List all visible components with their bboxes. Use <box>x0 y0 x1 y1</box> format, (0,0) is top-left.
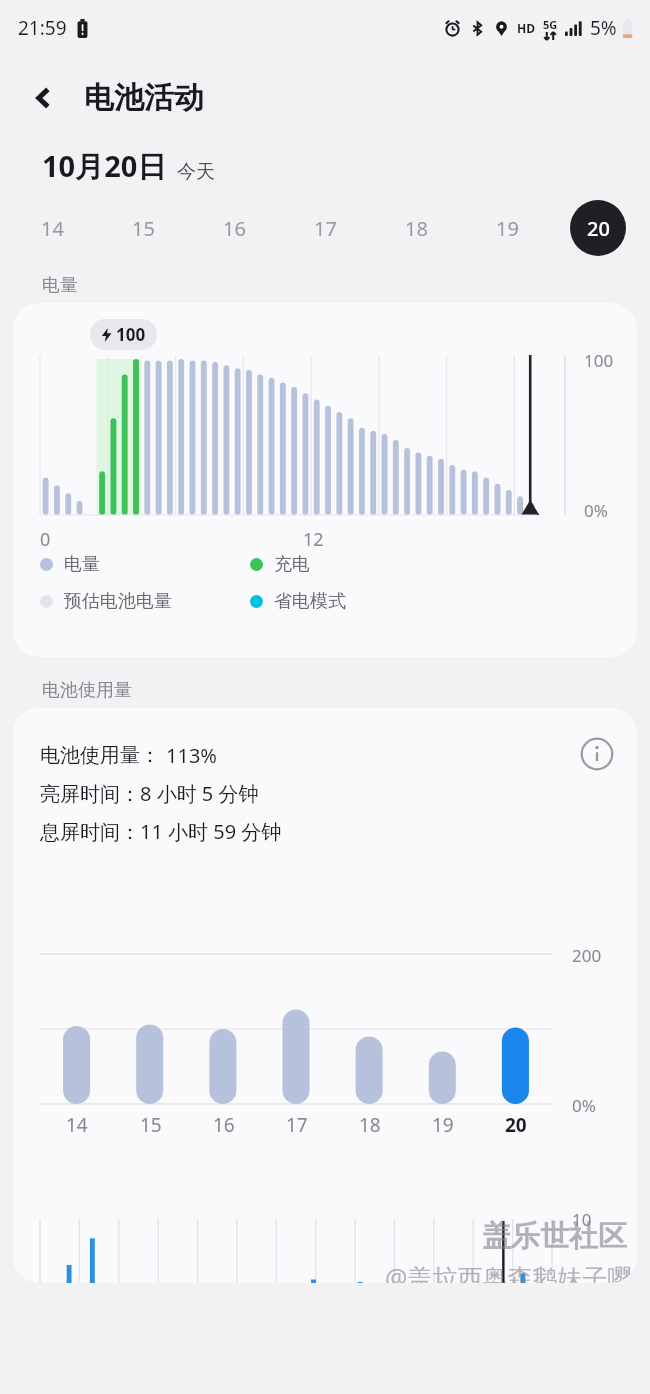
staticText: 15 <box>132 215 155 242</box>
staticText: 20 <box>505 1112 527 1138</box>
staticText: 电量 <box>42 274 78 297</box>
button[interactable]: 20 <box>570 200 626 256</box>
staticText: 0% <box>584 499 608 522</box>
staticText: 电池活动 <box>84 79 204 117</box>
button[interactable]: 省电模式 <box>250 590 450 613</box>
button[interactable]: 15 <box>115 200 171 256</box>
staticText: 19 <box>432 1112 454 1138</box>
button[interactable]: 14 <box>24 200 80 256</box>
staticText: 20 <box>587 215 610 242</box>
staticText: 113% <box>166 742 217 769</box>
staticText: 今天 <box>177 160 215 184</box>
button[interactable]: 预估电池电量 <box>40 590 250 613</box>
button[interactable]: 电池使用量： <box>13 708 637 1283</box>
staticText: 18 <box>359 1112 381 1138</box>
staticText: 100 <box>584 349 614 372</box>
staticText: 18 <box>405 215 428 242</box>
staticText: 14 <box>41 215 64 242</box>
staticText: 5G <box>543 17 558 32</box>
button[interactable]: 电量 <box>40 553 250 576</box>
staticText: 14 <box>66 1112 88 1138</box>
staticText: 亮屏时间：8 小时 5 分钟 <box>40 780 259 807</box>
staticText: 5% <box>590 15 617 41</box>
staticText: 100 <box>116 323 146 346</box>
button[interactable]: Info <box>575 732 619 776</box>
staticText: 电池使用量 <box>42 679 132 702</box>
staticText: 15 <box>140 1112 162 1138</box>
staticText: 19 <box>496 215 519 242</box>
staticText: 12 <box>303 527 324 552</box>
button[interactable]: Back <box>16 70 72 126</box>
staticText: 0 <box>40 527 51 552</box>
staticText: 17 <box>314 215 337 242</box>
staticText: 16 <box>223 215 246 242</box>
staticText: 充电 <box>274 553 310 576</box>
staticText: 预估电池电量 <box>64 590 172 613</box>
button[interactable]: 18 <box>388 200 444 256</box>
staticText: 电池使用量： <box>40 743 160 768</box>
staticText: 省电模式 <box>274 590 346 613</box>
staticText: 0% <box>572 1094 596 1117</box>
staticText: HD <box>517 20 535 36</box>
staticText: 10月20日 <box>42 146 167 186</box>
staticText: 盖乐世社区 <box>482 1218 627 1255</box>
staticText: 21:59 <box>18 15 67 41</box>
staticText: @盖垃西奥森鹅妹子嘤 <box>385 1260 633 1283</box>
button[interactable]: 19 <box>479 200 535 256</box>
staticText: 17 <box>286 1112 308 1138</box>
staticText: 电量 <box>64 553 100 576</box>
button[interactable]: 充电 <box>250 553 450 576</box>
staticText: 息屏时间：11 小时 59 分钟 <box>40 818 282 845</box>
button[interactable]: 16 <box>206 200 262 256</box>
staticText: 16 <box>213 1112 235 1138</box>
button[interactable]: 17 <box>297 200 353 256</box>
button[interactable]: 100 <box>13 303 637 657</box>
staticText: 200 <box>572 944 602 967</box>
staticText: 10 <box>572 1208 592 1231</box>
